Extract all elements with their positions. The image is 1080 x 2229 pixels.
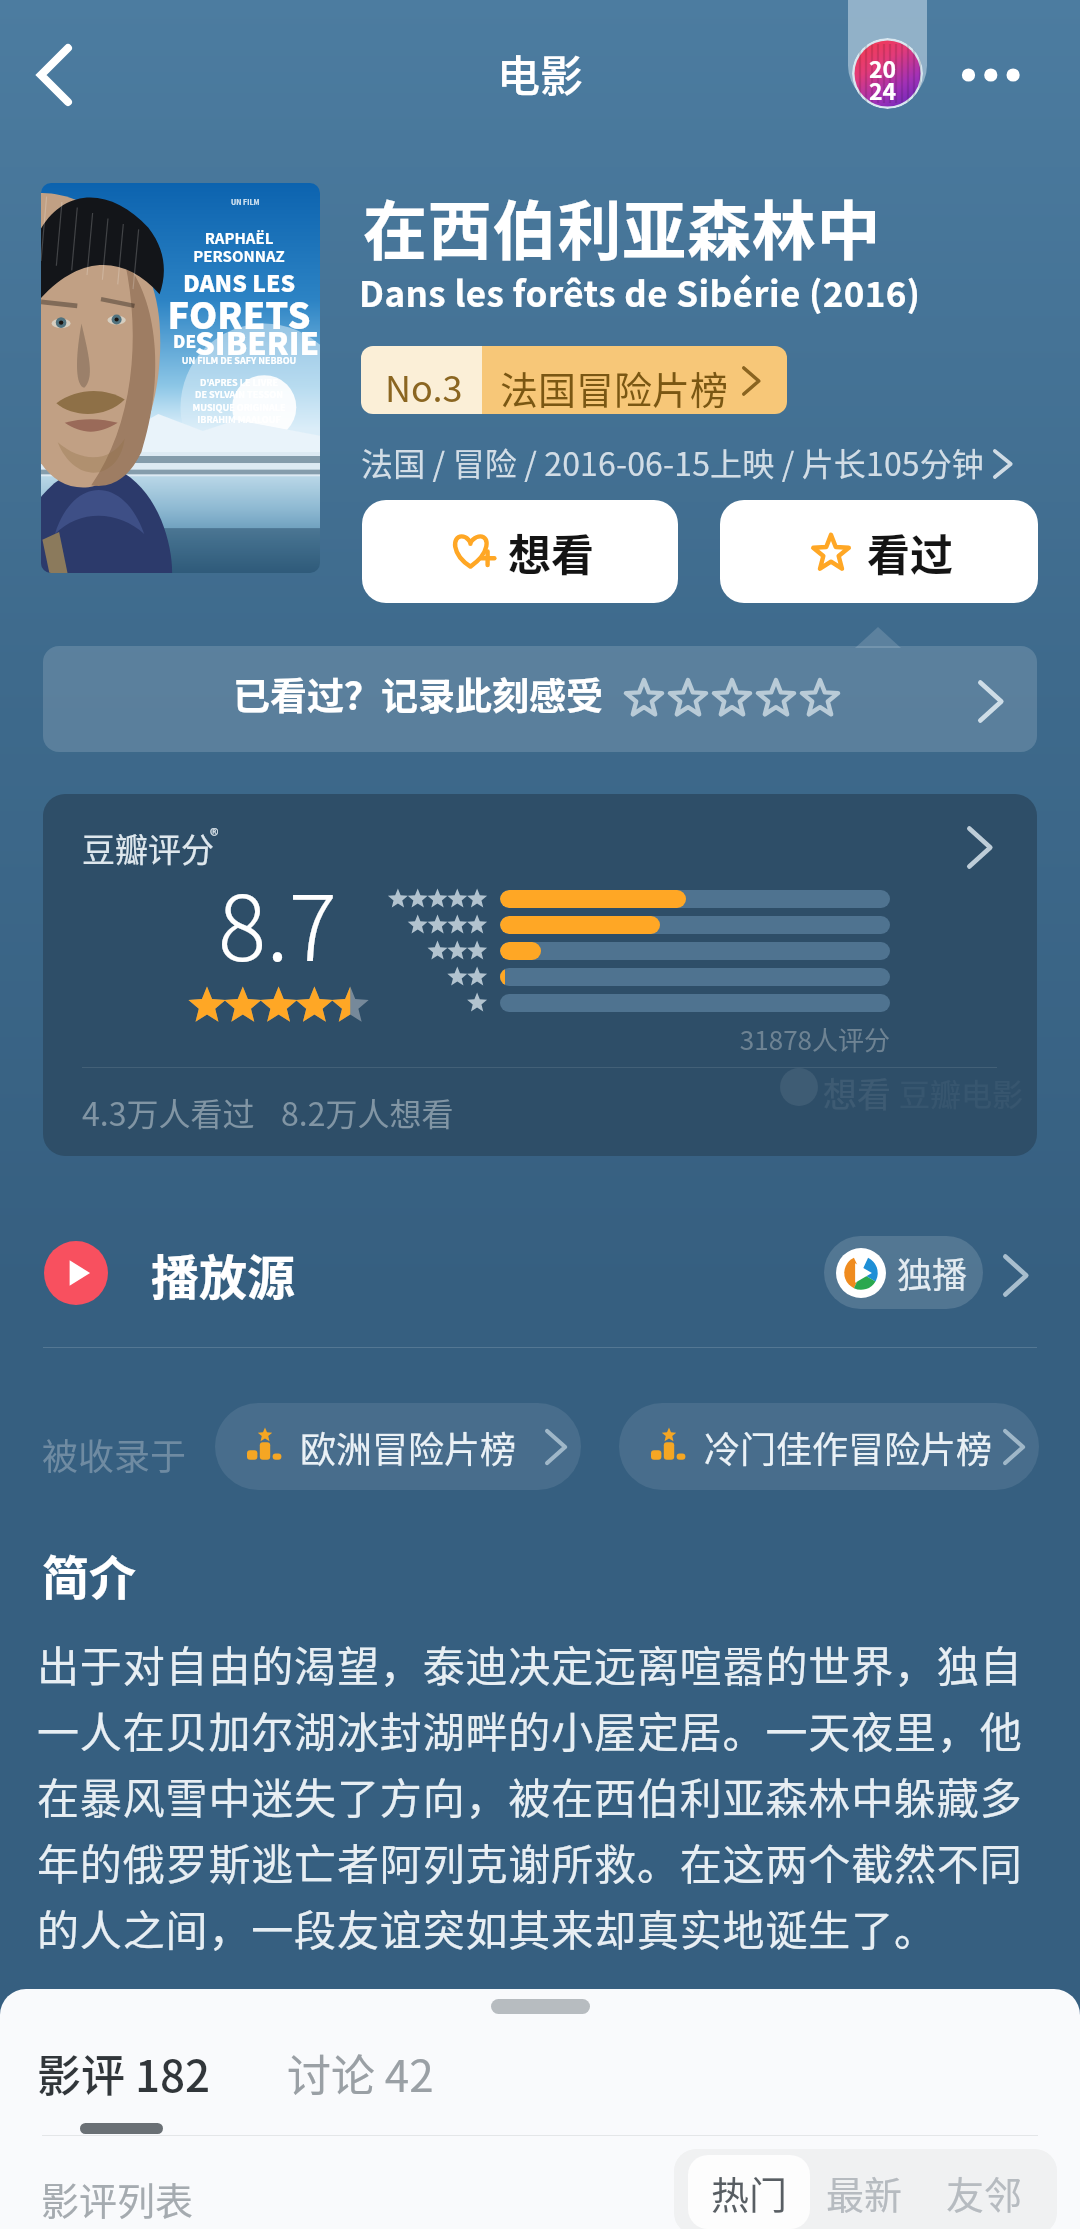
- staticText: 31878人评分: [643, 1020, 890, 1058]
- staticText: 已看过？记录此刻感受: [233, 667, 603, 721]
- staticText: RAPHAËL PERSONNAZ: [169, 227, 309, 266]
- button[interactable]: 返回: [8, 28, 98, 118]
- staticText: FORETS: [165, 287, 313, 339]
- staticText: UN FILM: [231, 197, 260, 207]
- staticText: 法国冒险片榜: [500, 360, 729, 414]
- staticText: 4.3万人看过: [82, 1089, 255, 1135]
- staticText: 独播: [897, 1247, 968, 1298]
- staticText: 20: [869, 51, 897, 84]
- staticText: 最新: [826, 2165, 903, 2220]
- staticText: Dans les forêts de Sibérie (2016): [359, 266, 921, 317]
- staticText: 简介: [42, 1540, 136, 1608]
- staticText: 被收录于: [42, 1428, 187, 1480]
- button[interactable]: 热门: [688, 2155, 810, 2229]
- staticText: ®: [210, 821, 219, 847]
- staticText: 看过: [867, 521, 953, 583]
- staticText: 想看: [508, 521, 594, 583]
- staticText: DE: [173, 328, 197, 353]
- staticText: 电影: [497, 42, 583, 104]
- button[interactable]: 已看过？记录此刻感受: [43, 646, 1037, 752]
- button[interactable]: 欧洲冒险片榜: [215, 1403, 581, 1490]
- staticText: 影评 182: [37, 2041, 211, 2105]
- button[interactable]: 友邻: [938, 2155, 1030, 2229]
- staticText: 豆瓣评分: [82, 824, 214, 872]
- staticText: No.3: [385, 360, 463, 412]
- button[interactable]: 更多: [938, 40, 1038, 108]
- button[interactable]: 讨论 42: [287, 2041, 434, 2105]
- staticText: 24: [869, 73, 897, 106]
- button[interactable]: 冷门佳作冒险片榜: [619, 1403, 1039, 1490]
- staticText: MUSIQUE ORIGINALE IBRAHIM MAALOUF: [165, 401, 313, 425]
- staticText: 8.2万人想看: [281, 1089, 454, 1135]
- button[interactable]: No.3: [361, 346, 787, 414]
- staticText: 友邻: [946, 2165, 1023, 2220]
- staticText: 影评列表: [41, 2171, 194, 2226]
- staticText: 豆瓣电影: [899, 1070, 1023, 1115]
- staticText: SIBERIE: [195, 319, 320, 364]
- button[interactable]: 2024 年度榜单: [852, 38, 923, 109]
- staticText: 想看: [823, 1068, 891, 1117]
- button[interactable]: 独播: [824, 1236, 983, 1309]
- button[interactable]: 最新: [818, 2155, 910, 2229]
- staticText: 出于对自由的渴望，泰迪决定远离喧嚣的世界，独自一人在贝加尔湖冰封湖畔的小屋定居。…: [37, 1633, 1027, 1958]
- staticText: 在西伯利亚森林中: [363, 180, 882, 273]
- staticText: D'APRES LE LIVRE DE SYLVAIN TESSON: [165, 376, 313, 400]
- staticText: 播放源: [151, 1239, 296, 1309]
- button[interactable]: 电影海报: [41, 183, 320, 573]
- staticText: 热门: [711, 2165, 788, 2220]
- button[interactable]: 影评 182: [37, 2041, 211, 2105]
- staticText: 8.7: [218, 857, 337, 987]
- button[interactable]: 想看: [362, 500, 678, 603]
- staticText: DANS LES: [169, 265, 309, 298]
- staticText: 欧洲冒险片榜: [300, 1421, 517, 1473]
- button[interactable]: 豆瓣评分: [43, 794, 1037, 1156]
- staticText: UN FILM DE SAFY NEBBOU: [165, 354, 313, 367]
- button[interactable]: 播放源: [0, 1218, 1080, 1328]
- button[interactable]: 看过: [720, 500, 1038, 603]
- staticText: 冷门佳作冒险片榜: [704, 1421, 993, 1473]
- staticText: 法国 / 冒险 / 2016-06-15上映 / 片长105分钟: [361, 439, 985, 485]
- staticText: 讨论 42: [287, 2041, 434, 2105]
